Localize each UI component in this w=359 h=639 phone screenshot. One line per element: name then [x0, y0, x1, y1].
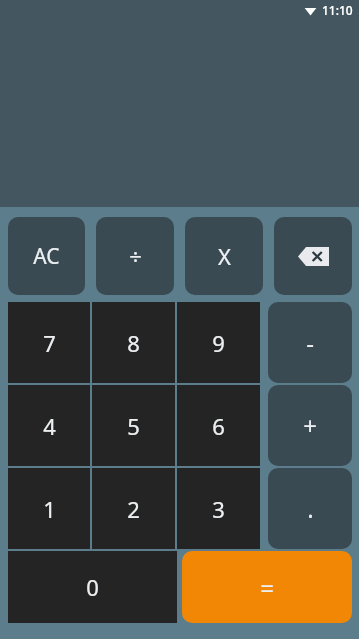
button[interactable]: X: [185, 217, 263, 295]
button[interactable]: ÷: [96, 217, 174, 295]
button[interactable]: 8: [92, 302, 175, 383]
button[interactable]: Backspace: [274, 217, 352, 295]
button[interactable]: .: [268, 468, 352, 549]
staticText: AC: [33, 242, 60, 271]
staticText: 0: [86, 572, 99, 602]
button[interactable]: 4: [8, 385, 90, 466]
button[interactable]: -: [268, 302, 352, 383]
button[interactable]: =: [182, 551, 352, 623]
staticText: +: [303, 409, 317, 442]
staticText: .: [307, 492, 314, 525]
staticText: 6: [212, 411, 225, 441]
button[interactable]: 9: [177, 302, 260, 383]
button[interactable]: 1: [8, 468, 90, 549]
button[interactable]: 6: [177, 385, 260, 466]
button[interactable]: 2: [92, 468, 175, 549]
staticText: -: [306, 326, 314, 359]
staticText: ÷: [129, 241, 142, 271]
staticText: 11:10: [322, 2, 353, 18]
button[interactable]: 0: [8, 551, 177, 623]
staticText: X: [218, 241, 231, 271]
staticText: 2: [127, 494, 140, 524]
button[interactable]: 5: [92, 385, 175, 466]
staticText: 8: [127, 328, 140, 358]
staticText: 4: [43, 411, 56, 441]
button[interactable]: 7: [8, 302, 90, 383]
staticText: 3: [212, 494, 225, 524]
staticText: 1: [43, 494, 56, 524]
button[interactable]: AC: [8, 217, 85, 295]
staticText: 9: [212, 328, 225, 358]
button[interactable]: +: [268, 385, 352, 466]
staticText: 5: [127, 411, 140, 441]
staticText: =: [260, 571, 274, 604]
button[interactable]: 3: [177, 468, 260, 549]
staticText: 7: [43, 328, 56, 358]
